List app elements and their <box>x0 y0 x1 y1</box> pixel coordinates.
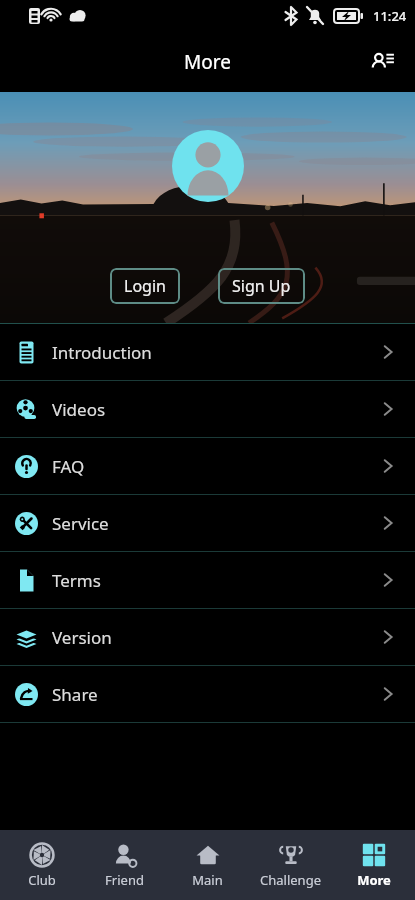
staticText: Friend <box>105 871 144 889</box>
button[interactable]: Club <box>0 830 83 900</box>
staticText: Club <box>28 871 56 889</box>
staticText: Challenge <box>260 871 321 889</box>
staticText: More <box>357 871 391 889</box>
button[interactable]: Share <box>0 666 415 722</box>
staticText: Main <box>192 871 223 889</box>
staticText: Sign Up <box>232 275 291 297</box>
staticText: Service <box>52 512 379 535</box>
button[interactable]: Friend <box>83 830 166 900</box>
staticText: Login <box>124 275 166 297</box>
staticText: FAQ <box>52 455 379 478</box>
staticText: Introduction <box>52 341 379 364</box>
button[interactable]: Challenge <box>249 830 332 900</box>
button[interactable]: Login <box>110 268 180 304</box>
staticText: Version <box>52 626 379 649</box>
button[interactable]: Contacts <box>359 38 407 86</box>
staticText: More <box>184 49 231 75</box>
button[interactable]: FAQ <box>0 438 415 494</box>
button[interactable]: Sign Up <box>218 268 305 304</box>
staticText: Terms <box>52 569 379 592</box>
staticText: Share <box>52 683 379 706</box>
button[interactable]: Service <box>0 495 415 551</box>
staticText: Videos <box>52 398 379 421</box>
button[interactable]: Terms <box>0 552 415 608</box>
button[interactable]: Version <box>0 609 415 665</box>
button[interactable]: Videos <box>0 381 415 437</box>
button[interactable]: Introduction <box>0 324 415 380</box>
button[interactable]: More <box>332 830 415 900</box>
staticText: 11:24 <box>373 7 407 25</box>
button[interactable]: Main <box>166 830 249 900</box>
button[interactable] <box>172 130 244 202</box>
